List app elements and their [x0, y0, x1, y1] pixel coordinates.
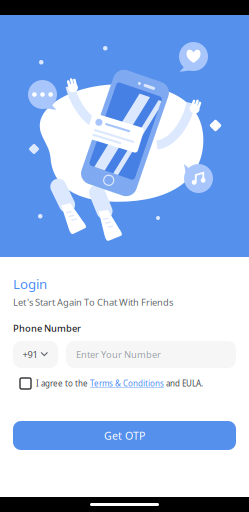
staticText: Phone Number [13, 322, 81, 334]
button[interactable]: Enter Your Number [66, 341, 236, 368]
staticText: I agree to the [36, 378, 90, 389]
staticText: +91 [22, 348, 37, 361]
staticText: and EULA. [164, 378, 203, 389]
staticText: Terms & Conditions [90, 378, 164, 389]
button[interactable]: Get OTP [13, 421, 236, 450]
button[interactable]: Agree to terms and conditions [20, 378, 31, 389]
staticText: Login [13, 275, 47, 293]
staticText: Let's Start Again To Chat With Friends [13, 296, 173, 308]
staticText: Get OTP [104, 428, 145, 443]
button[interactable]: +91 [13, 341, 58, 368]
staticText: Enter Your Number [76, 348, 161, 361]
